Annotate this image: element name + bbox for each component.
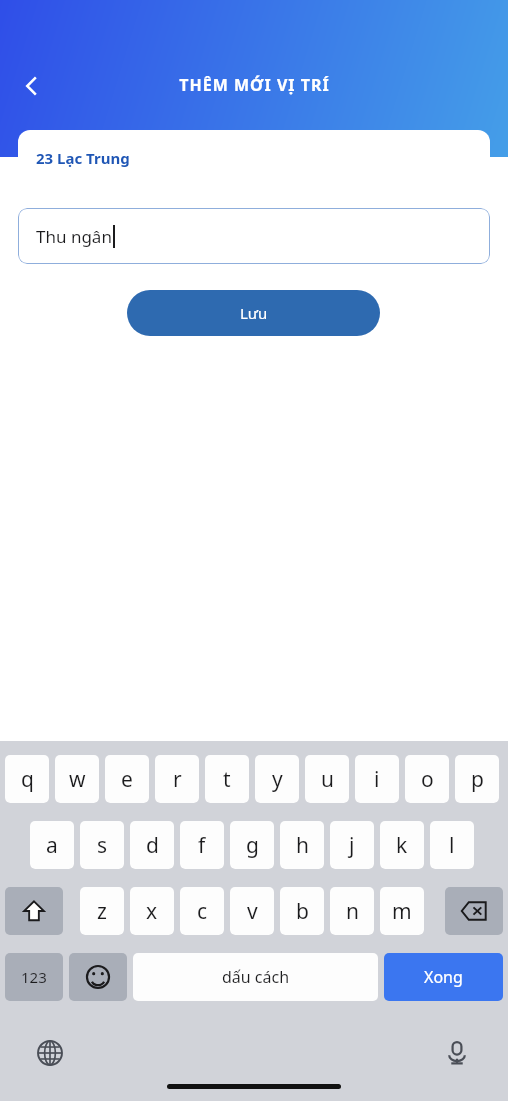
staticText: b [296, 897, 309, 926]
staticText: THÊM MỚI VỊ TRÍ [179, 74, 330, 96]
staticText: f [198, 831, 206, 860]
staticText: Thu ngân [36, 225, 112, 248]
button[interactable]: u [305, 755, 349, 803]
button[interactable]: l [430, 821, 474, 869]
staticText: w [69, 765, 86, 794]
button[interactable]: 23 Lạc Trung [18, 130, 490, 186]
button[interactable]: c [180, 887, 224, 935]
staticText: u [321, 765, 334, 794]
button[interactable]: p [455, 755, 499, 803]
button[interactable]: v [230, 887, 274, 935]
button[interactable]: d [130, 821, 174, 869]
staticText: j [349, 831, 355, 860]
button[interactable]: q [5, 755, 49, 803]
staticText: t [223, 765, 231, 794]
staticText: c [197, 897, 208, 926]
staticText: q [21, 765, 34, 794]
button[interactable]: a [30, 821, 74, 869]
staticText: i [374, 765, 380, 794]
staticText: y [272, 765, 283, 794]
staticText: s [97, 831, 108, 860]
button[interactable]: b [280, 887, 324, 935]
button[interactable]: Xong [384, 953, 503, 1001]
button[interactable]: f [180, 821, 224, 869]
button[interactable]: w [55, 755, 99, 803]
button[interactable]: k [380, 821, 424, 869]
button[interactable]: Emoji [69, 953, 127, 1001]
button[interactable]: Thu ngân [18, 208, 490, 264]
button[interactable]: Backspace [445, 887, 503, 935]
button[interactable]: z [80, 887, 124, 935]
staticText: e [121, 765, 133, 794]
staticText: r [173, 765, 182, 794]
button[interactable]: y [255, 755, 299, 803]
staticText: x [146, 897, 158, 926]
staticText: v [247, 897, 258, 926]
staticText: 23 Lạc Trung [36, 148, 130, 168]
button[interactable]: Shift [5, 887, 63, 935]
button[interactable]: dấu cách [133, 953, 378, 1001]
staticText: m [392, 897, 412, 926]
button[interactable]: 123 [5, 953, 63, 1001]
staticText: g [246, 831, 259, 860]
staticText: 123 [21, 967, 47, 987]
staticText: o [421, 765, 434, 794]
button[interactable]: x [130, 887, 174, 935]
staticText: z [97, 897, 107, 926]
button[interactable]: o [405, 755, 449, 803]
button[interactable]: m [380, 887, 424, 935]
staticText: d [146, 831, 159, 860]
button[interactable]: Back [8, 62, 56, 110]
staticText: Xong [424, 966, 463, 988]
button[interactable]: h [280, 821, 324, 869]
button[interactable]: s [80, 821, 124, 869]
button[interactable]: Lưu [127, 290, 380, 336]
button[interactable]: Voice input [433, 1029, 481, 1077]
button[interactable]: i [355, 755, 399, 803]
button[interactable]: n [330, 887, 374, 935]
staticText: dấu cách [222, 966, 290, 988]
button[interactable]: t [205, 755, 249, 803]
staticText: h [296, 831, 309, 860]
staticText: a [46, 831, 58, 860]
button[interactable]: j [330, 821, 374, 869]
staticText: l [449, 831, 455, 860]
button[interactable]: Change keyboard language [26, 1029, 74, 1077]
button[interactable]: r [155, 755, 199, 803]
staticText: n [346, 897, 359, 926]
button[interactable]: g [230, 821, 274, 869]
staticText: p [471, 765, 484, 794]
staticText: Lưu [240, 303, 268, 323]
button[interactable]: e [105, 755, 149, 803]
staticText: k [396, 831, 408, 860]
